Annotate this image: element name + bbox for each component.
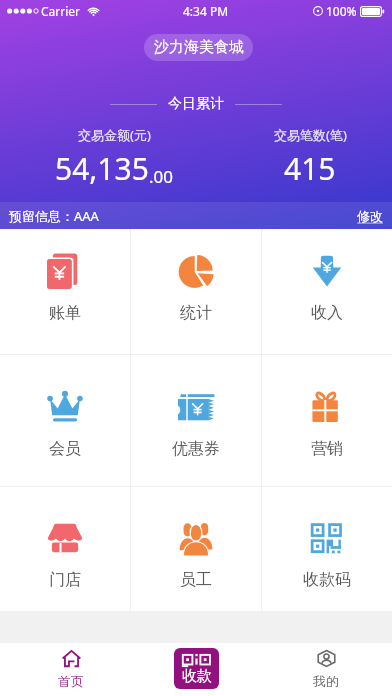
staticText: 修改 bbox=[357, 208, 383, 224]
staticText: 收款码 bbox=[303, 570, 351, 590]
staticText: 今日累计 bbox=[168, 95, 224, 113]
staticText: 统计 bbox=[180, 303, 212, 323]
button[interactable]: 修改 bbox=[357, 208, 383, 224]
staticText: 交易金额(元) bbox=[78, 126, 151, 144]
button[interactable]: 优惠券 bbox=[131, 355, 261, 486]
staticText: 交易笔数(笔) bbox=[274, 126, 347, 144]
staticText: 415 bbox=[284, 148, 336, 189]
staticText: 门店 bbox=[49, 570, 81, 590]
staticText: 预留信息：AAA bbox=[9, 207, 99, 225]
staticText: 会员 bbox=[49, 439, 81, 459]
button[interactable]: 我的 bbox=[296, 643, 356, 696]
button[interactable]: 营销 bbox=[262, 355, 392, 486]
staticText: 我的 bbox=[313, 673, 339, 689]
button[interactable]: 收款 bbox=[174, 648, 219, 689]
staticText: 员工 bbox=[180, 570, 212, 590]
button[interactable]: 首页 bbox=[41, 643, 101, 696]
staticText: 账单 bbox=[49, 303, 81, 323]
button[interactable]: 门店 bbox=[0, 487, 130, 611]
staticText: 优惠券 bbox=[172, 439, 220, 459]
staticText: Carrier bbox=[41, 3, 81, 19]
staticText: .00 bbox=[149, 165, 174, 188]
staticText: 收入 bbox=[311, 303, 343, 323]
button[interactable]: 账单 bbox=[0, 229, 130, 354]
button[interactable]: 收款码 bbox=[262, 487, 392, 611]
button[interactable]: 会员 bbox=[0, 355, 130, 486]
button[interactable]: 员工 bbox=[131, 487, 261, 611]
staticText: 54,135 bbox=[55, 148, 149, 189]
staticText: 首页 bbox=[58, 673, 84, 689]
button[interactable]: 沙力海美食城 bbox=[144, 34, 253, 61]
staticText: 100% bbox=[326, 3, 357, 19]
staticText: 沙力海美食城 bbox=[154, 38, 244, 57]
staticText: 4:34 PM bbox=[183, 3, 229, 19]
staticText: 收款 bbox=[182, 667, 212, 686]
button[interactable]: 统计 bbox=[131, 229, 261, 354]
button[interactable]: 收入 bbox=[262, 229, 392, 354]
staticText: 营销 bbox=[311, 439, 343, 459]
